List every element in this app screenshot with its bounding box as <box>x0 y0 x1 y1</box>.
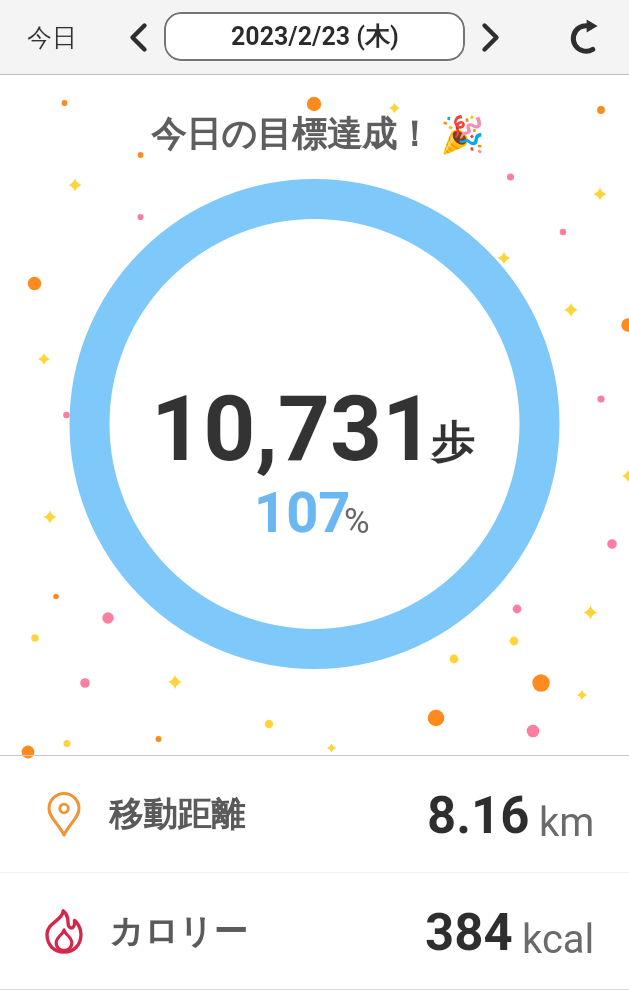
staticText: 2023/2/23 (木) <box>231 21 399 52</box>
button[interactable]: Refresh <box>554 0 618 74</box>
staticText: 10,731 <box>151 376 435 483</box>
staticText: 🎉 <box>440 114 485 156</box>
button[interactable]: 今日 <box>0 0 104 74</box>
staticText: カロリー <box>109 910 248 953</box>
button[interactable]: 2023/2/23 (木) <box>164 12 465 61</box>
button[interactable]: Next day <box>466 0 514 74</box>
staticText: km <box>539 799 595 846</box>
staticText: % <box>344 501 370 542</box>
staticText: kcal <box>522 916 595 963</box>
staticText: 107 <box>254 480 351 546</box>
button[interactable]: カロリー <box>0 873 629 989</box>
staticText: 384 <box>425 903 513 963</box>
button[interactable]: 移動距離 <box>0 756 629 872</box>
staticText: 歩 <box>431 416 474 470</box>
staticText: 今日の目標達成！ <box>151 112 432 156</box>
staticText: 移動距離 <box>109 793 245 836</box>
staticText: 8.16 <box>427 786 530 846</box>
button[interactable]: Previous day <box>114 0 162 74</box>
staticText: 今日 <box>27 22 77 53</box>
